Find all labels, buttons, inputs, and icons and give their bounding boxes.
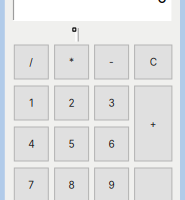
staticText: 2 xyxy=(69,97,75,109)
button[interactable]: 4 xyxy=(14,127,48,161)
button[interactable]: 8 xyxy=(55,168,89,200)
button[interactable]: 9 xyxy=(95,168,129,200)
button[interactable]: 3 xyxy=(95,86,129,120)
button[interactable]: 7 xyxy=(14,168,48,200)
button[interactable]: C xyxy=(135,45,172,79)
staticText: / xyxy=(29,56,33,68)
staticText: - xyxy=(109,56,114,68)
staticText: 6 xyxy=(109,138,115,150)
button[interactable]: 5 xyxy=(55,127,89,161)
button[interactable]: 6 xyxy=(95,127,129,161)
button[interactable]: 2 xyxy=(55,86,89,120)
staticText: 3 xyxy=(109,97,115,109)
staticText: 7 xyxy=(28,179,34,191)
button[interactable]: + xyxy=(135,86,172,161)
staticText: 5 xyxy=(69,138,75,150)
staticText: 4 xyxy=(28,138,34,150)
button[interactable]: * xyxy=(55,45,89,79)
staticText: + xyxy=(150,117,157,130)
staticText: C xyxy=(150,56,157,68)
staticText: * xyxy=(69,56,74,68)
staticText: 1 xyxy=(29,97,33,109)
button[interactable]: Equals xyxy=(135,168,172,200)
staticText: 0 xyxy=(157,0,167,7)
button[interactable]: 1 xyxy=(14,86,48,120)
button[interactable]: - xyxy=(95,45,129,79)
staticText: 8 xyxy=(69,179,75,191)
staticText: 9 xyxy=(109,179,115,191)
button[interactable]: / xyxy=(14,45,48,79)
